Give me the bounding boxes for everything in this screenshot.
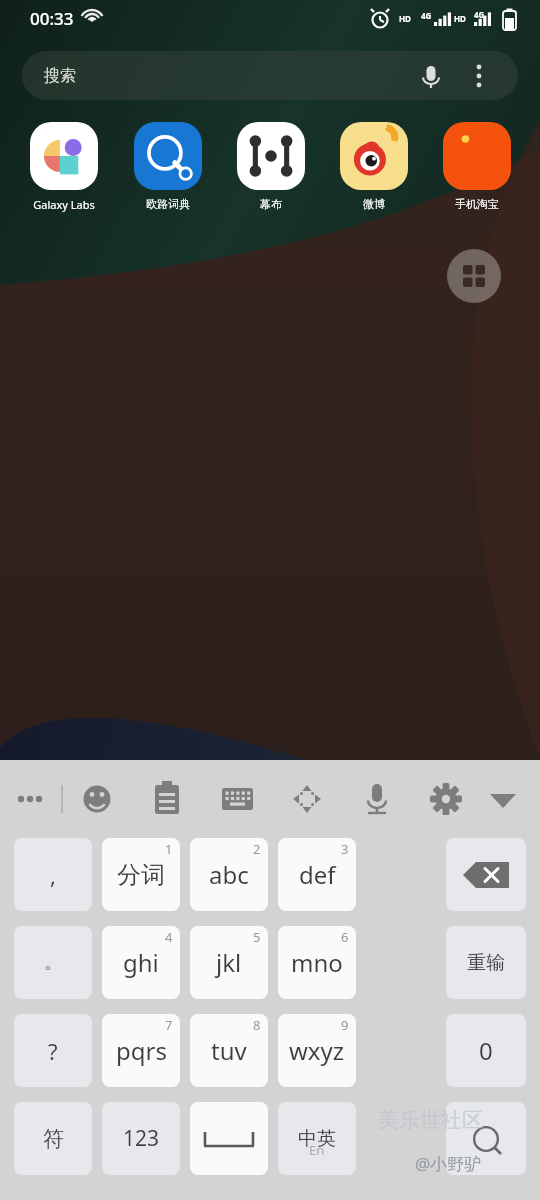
button[interactable]: More: [10, 779, 50, 819]
staticText: 123: [123, 1124, 160, 1153]
button[interactable]: Apps: [447, 249, 501, 303]
staticText: HD: [454, 13, 466, 24]
staticText: 重输: [467, 951, 505, 975]
button[interactable]: ?: [14, 1014, 92, 1087]
staticText: 0: [479, 1034, 493, 1067]
staticText: 。: [44, 951, 62, 974]
button[interactable]: 搜索: [22, 51, 518, 100]
button[interactable]: wxyz: [278, 1014, 356, 1087]
button[interactable]: 欧路词典: [116, 122, 219, 211]
staticText: def: [299, 858, 336, 891]
staticText: mno: [291, 946, 343, 979]
staticText: @小野驴: [415, 1152, 482, 1175]
staticText: wxyz: [289, 1034, 345, 1067]
button[interactable]: 重输: [446, 926, 526, 999]
button[interactable]: abc: [190, 838, 268, 911]
staticText: 欧路词典: [146, 197, 190, 211]
button[interactable]: 幕布: [219, 122, 322, 211]
staticText: 8: [253, 1016, 261, 1034]
staticText: 3: [341, 840, 349, 858]
staticText: 微博: [363, 197, 385, 211]
button[interactable]: Clipboard: [147, 779, 187, 819]
button[interactable]: Voice search: [416, 61, 446, 91]
staticText: 手机淘宝: [455, 197, 499, 211]
staticText: 分词: [117, 860, 165, 890]
staticText: tuv: [211, 1034, 247, 1067]
button[interactable]: Emoji: [77, 779, 117, 819]
staticText: 7: [165, 1016, 173, 1034]
staticText: 2: [253, 840, 261, 858]
staticText: Galaxy Labs: [33, 197, 95, 212]
staticText: pqrs: [116, 1034, 167, 1067]
staticText: 幕布: [260, 197, 282, 211]
button[interactable]: 123: [102, 1102, 180, 1175]
button[interactable]: 。: [14, 926, 92, 999]
staticText: 中英: [298, 1127, 336, 1151]
button[interactable]: Settings: [426, 779, 466, 819]
button[interactable]: Hide keyboard: [483, 779, 523, 819]
button[interactable]: More options: [464, 61, 494, 91]
button[interactable]: tuv: [190, 1014, 268, 1087]
button[interactable]: ,: [14, 838, 92, 911]
staticText: En: [309, 1141, 325, 1159]
button[interactable]: Voice input: [357, 779, 397, 819]
button[interactable]: Space: [190, 1102, 268, 1175]
button[interactable]: ghi: [102, 926, 180, 999]
staticText: ?: [48, 1036, 58, 1066]
staticText: ,: [50, 860, 56, 890]
staticText: ghi: [123, 946, 159, 979]
staticText: jkl: [216, 946, 242, 979]
staticText: abc: [209, 858, 249, 891]
staticText: 美乐世社区: [378, 1107, 483, 1133]
button[interactable]: Enter: [446, 1102, 526, 1175]
button[interactable]: 分词: [102, 838, 180, 911]
staticText: 符: [43, 1126, 64, 1152]
staticText: 5: [253, 928, 261, 946]
button[interactable]: pqrs: [102, 1014, 180, 1087]
staticText: 4G: [474, 9, 485, 20]
button[interactable]: def: [278, 838, 356, 911]
button[interactable]: 微博: [322, 122, 425, 211]
button[interactable]: Backspace: [446, 838, 526, 911]
staticText: 1: [165, 840, 173, 858]
staticText: 9: [341, 1016, 349, 1034]
button[interactable]: Keyboard layout: [217, 779, 257, 819]
button[interactable]: Galaxy Labs: [12, 122, 116, 212]
staticText: 搜索: [44, 66, 76, 86]
button[interactable]: 中英: [278, 1102, 356, 1175]
button[interactable]: jkl: [190, 926, 268, 999]
button[interactable]: 手机淘宝: [425, 122, 528, 211]
staticText: 6: [341, 928, 349, 946]
staticText: 4: [165, 928, 173, 946]
staticText: 00:33: [30, 7, 74, 30]
button[interactable]: Move cursor: [287, 779, 327, 819]
staticText: HD: [399, 13, 411, 24]
button[interactable]: 符: [14, 1102, 92, 1175]
staticText: 4G: [421, 10, 432, 21]
button[interactable]: 0: [446, 1014, 526, 1087]
button[interactable]: mno: [278, 926, 356, 999]
